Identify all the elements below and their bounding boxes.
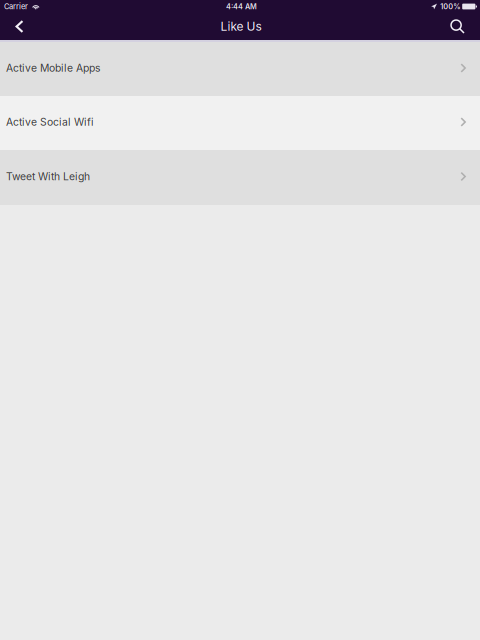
staticText: Active Social Wifi — [6, 116, 94, 128]
staticText: 100% — [440, 2, 460, 11]
staticText: Tweet With Leigh — [6, 170, 90, 183]
button[interactable]: Tweet With Leigh — [0, 150, 480, 205]
button[interactable]: Search — [441, 13, 474, 40]
staticText: Like Us — [220, 19, 261, 34]
button[interactable]: Active Mobile Apps — [0, 42, 480, 96]
button[interactable]: Back — [3, 13, 36, 40]
staticText: Carrier — [4, 2, 28, 11]
staticText: Active Mobile Apps — [6, 62, 100, 74]
button[interactable]: Active Social Wifi — [0, 96, 480, 150]
staticText: 4:44 AM — [226, 2, 257, 11]
